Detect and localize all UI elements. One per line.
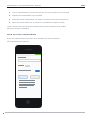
staticText: Start by launching the app and follow th… xyxy=(7,37,60,40)
staticText: Test the interface on a variety of diffe… xyxy=(12,21,65,24)
staticText: Note: Some of the features described her… xyxy=(7,25,67,28)
staticText: Developer Documentation Guide xyxy=(7,4,41,7)
staticText: Use a consistent layout across all of th… xyxy=(12,11,70,14)
staticText: Provide clear feedback for every action … xyxy=(12,18,69,21)
staticText: Step by step onboarding xyxy=(7,32,36,35)
staticText: version of the runtime. xyxy=(7,27,30,30)
staticText: to complete the setup. xyxy=(7,40,30,43)
staticText: Keep the navigation bar visible xyxy=(12,14,43,17)
